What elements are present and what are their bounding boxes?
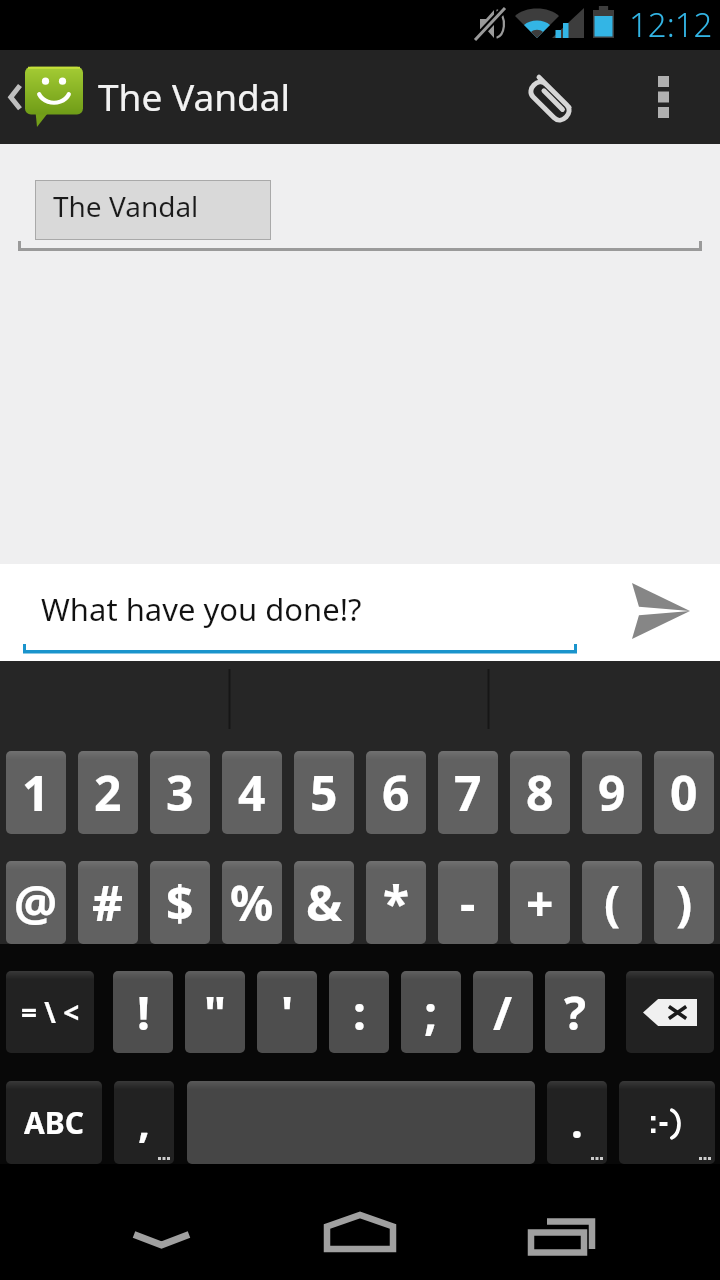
- button[interactable]: 3: [150, 751, 210, 834]
- button[interactable]: The Vandal: [35, 180, 271, 240]
- button[interactable]: @: [6, 861, 66, 944]
- button[interactable]: Attach: [496, 50, 608, 144]
- staticText: The Vandal: [98, 71, 291, 121]
- staticText: = \ <: [21, 993, 80, 1031]
- staticText: :: [353, 981, 366, 1044]
- staticText: 5: [310, 760, 338, 825]
- staticText: ): [676, 870, 693, 935]
- staticText: 7: [454, 760, 482, 825]
- staticText: ": [204, 981, 227, 1044]
- button[interactable]: .: [547, 1081, 607, 1164]
- staticText: What have you done!?: [41, 588, 362, 630]
- button[interactable]: -: [438, 861, 498, 944]
- button[interactable]: 7: [438, 751, 498, 834]
- button[interactable]: 6: [366, 751, 426, 834]
- button[interactable]: %: [222, 861, 282, 944]
- staticText: %: [230, 870, 274, 935]
- staticText: ;: [424, 981, 438, 1044]
- button[interactable]: &: [294, 861, 354, 944]
- staticText: -: [460, 870, 476, 935]
- staticText: The Vandal: [53, 187, 199, 225]
- staticText: #: [92, 870, 124, 935]
- button[interactable]: Space: [187, 1081, 535, 1164]
- button[interactable]: 2: [78, 751, 138, 834]
- button[interactable]: Send: [588, 564, 720, 661]
- button[interactable]: :: [329, 971, 389, 1053]
- button[interactable]: Delete: [626, 971, 714, 1053]
- button[interactable]: #: [78, 861, 138, 944]
- staticText: (: [604, 870, 621, 935]
- button[interactable]: Emoticons: [619, 1081, 715, 1164]
- staticText: 12:12: [629, 2, 713, 47]
- button[interactable]: 1: [6, 751, 66, 834]
- button[interactable]: 4: [222, 751, 282, 834]
- staticText: /: [493, 981, 513, 1044]
- staticText: +: [526, 870, 554, 935]
- button[interactable]: 8: [510, 751, 570, 834]
- button[interactable]: ?: [545, 971, 605, 1053]
- button[interactable]: ,: [114, 1081, 174, 1164]
- staticText: 3: [166, 760, 194, 825]
- button[interactable]: More options: [608, 50, 720, 144]
- staticText: 2: [94, 760, 122, 825]
- button[interactable]: !: [113, 971, 173, 1053]
- staticText: ?: [564, 981, 586, 1044]
- staticText: ABC: [24, 1102, 84, 1143]
- button[interactable]: (: [582, 861, 642, 944]
- button[interactable]: ': [257, 971, 317, 1053]
- staticText: 6: [382, 760, 410, 825]
- staticText: .: [571, 1093, 583, 1150]
- staticText: @: [14, 870, 58, 935]
- staticText: &: [306, 870, 343, 935]
- staticText: 8: [526, 760, 554, 825]
- staticText: 4: [238, 760, 266, 825]
- button[interactable]: ;: [401, 971, 461, 1053]
- staticText: !: [137, 981, 150, 1044]
- button[interactable]: Home: [240, 1164, 480, 1280]
- button[interactable]: Hide keyboard: [0, 1164, 240, 1280]
- button[interactable]: ): [654, 861, 714, 944]
- staticText: 1: [22, 760, 50, 825]
- staticText: ': [281, 981, 294, 1044]
- button[interactable]: ": [185, 971, 245, 1053]
- staticText: *: [383, 870, 410, 935]
- button[interactable]: *: [366, 861, 426, 944]
- staticText: ,: [138, 1093, 150, 1150]
- button[interactable]: Recent apps: [480, 1164, 720, 1280]
- button[interactable]: /: [473, 971, 533, 1053]
- button[interactable]: $: [150, 861, 210, 944]
- button[interactable]: +: [510, 861, 570, 944]
- staticText: 9: [598, 760, 626, 825]
- button[interactable]: ABC: [6, 1081, 102, 1164]
- staticText: $: [166, 870, 194, 935]
- button[interactable]: 5: [294, 751, 354, 834]
- button[interactable]: 0: [654, 751, 714, 834]
- button[interactable]: = \ <: [6, 971, 94, 1053]
- button[interactable]: 9: [582, 751, 642, 834]
- button[interactable]: Navigate up: [0, 50, 291, 144]
- staticText: 0: [670, 760, 698, 825]
